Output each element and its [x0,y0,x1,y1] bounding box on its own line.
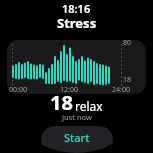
button[interactable]: Start [41,126,113,153]
staticText: 18 [123,75,132,85]
staticText: 80 [123,38,132,48]
staticText: 24:00 [112,85,130,95]
button[interactable] [7,40,146,94]
staticText: 18:16 [62,1,91,16]
staticText: 00:00 [9,85,27,95]
staticText: 12:00 [60,85,78,95]
staticText: Just now [62,112,92,122]
staticText: relax [75,98,103,114]
staticText: 18 [50,89,73,116]
staticText: Stress [57,14,97,32]
staticText: Start [64,130,90,145]
